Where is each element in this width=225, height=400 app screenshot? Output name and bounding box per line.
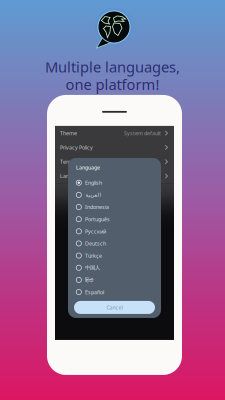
staticText: Português xyxy=(85,216,110,223)
staticText: Privacy Policy xyxy=(60,144,93,151)
button[interactable]: Cancel xyxy=(74,301,155,314)
staticText: Cancel xyxy=(106,304,122,311)
button[interactable]: 中国人 xyxy=(68,262,161,274)
staticText: English xyxy=(85,179,102,186)
button[interactable]: Türkçe xyxy=(68,249,161,262)
staticText: हिंदी xyxy=(85,276,93,283)
button[interactable]: Deutsch xyxy=(68,237,161,250)
staticText: System default xyxy=(124,130,161,137)
staticText: Language xyxy=(76,164,100,171)
staticText: Русский xyxy=(85,228,106,235)
staticText: Terms of Service xyxy=(60,158,101,165)
staticText: Multiple languages, xyxy=(45,57,180,76)
staticText: العربية xyxy=(85,192,100,198)
button[interactable]: हिंदी xyxy=(68,274,161,286)
button[interactable]: Language xyxy=(55,169,174,183)
staticText: 中国人 xyxy=(85,264,100,271)
button[interactable]: Español xyxy=(68,286,161,298)
staticText: one platform! xyxy=(65,74,159,94)
button[interactable]: العربية xyxy=(68,189,161,201)
button[interactable]: Português xyxy=(68,213,161,225)
button[interactable]: Theme xyxy=(55,126,174,140)
staticText: Türkçe xyxy=(85,252,102,259)
button[interactable]: English xyxy=(68,177,161,189)
staticText: Deutsch xyxy=(85,240,106,247)
staticText: Language xyxy=(60,172,84,180)
button[interactable]: Privacy Policy xyxy=(55,140,174,155)
staticText: Theme xyxy=(60,130,77,137)
button[interactable]: Indonesia xyxy=(68,201,161,213)
staticText: Español xyxy=(85,288,104,296)
button[interactable]: Русский xyxy=(68,225,161,237)
button[interactable]: Terms of Service xyxy=(55,155,174,169)
staticText: Indonesia xyxy=(85,203,109,211)
